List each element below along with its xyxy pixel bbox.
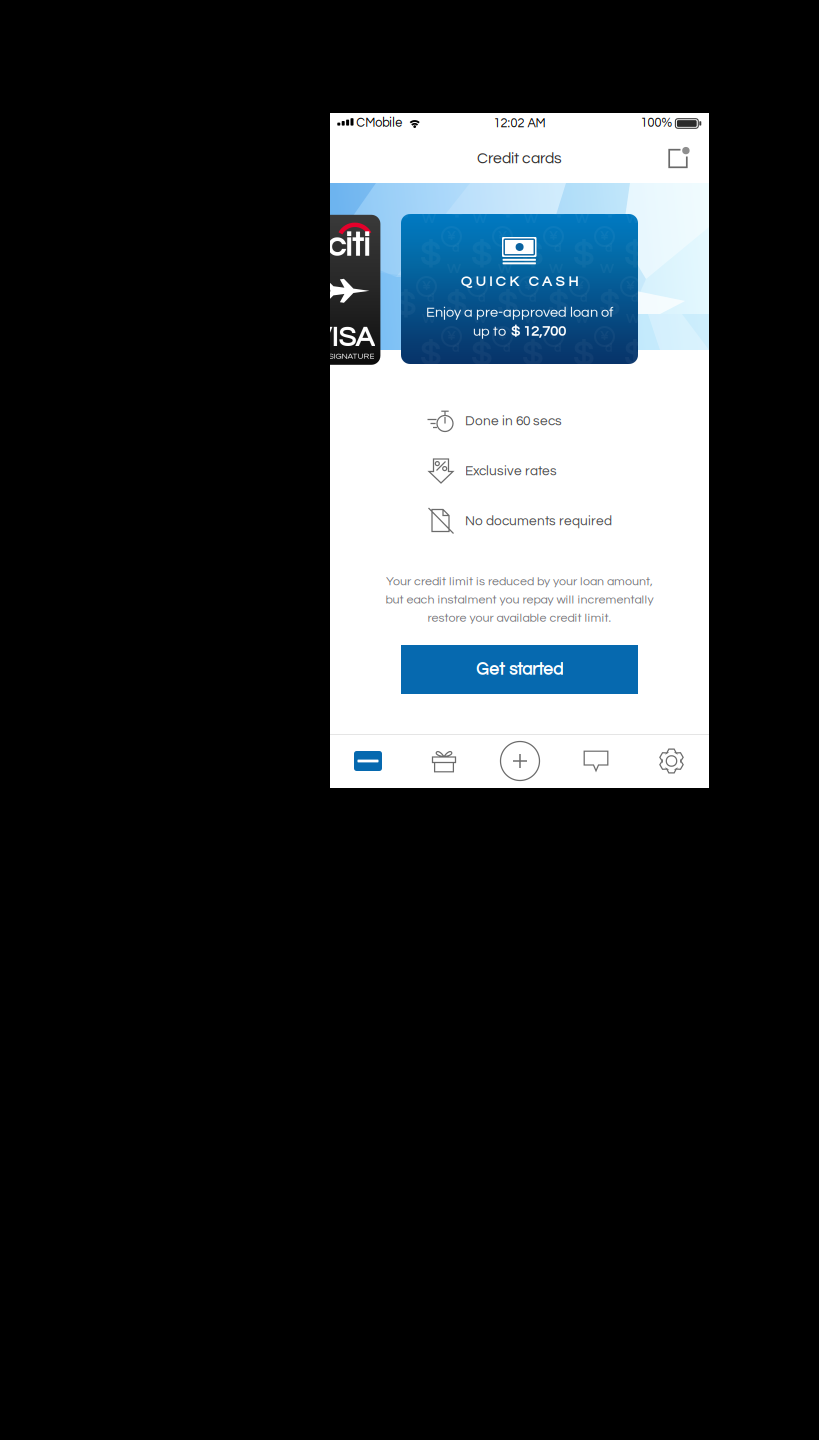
staticText: ¥ bbox=[447, 330, 456, 343]
staticText: d bbox=[427, 292, 434, 304]
button[interactable]: Notifications bbox=[656, 136, 700, 180]
staticText: restore your available credit limit. bbox=[427, 611, 611, 624]
staticText: Get started bbox=[476, 661, 563, 678]
staticText: W bbox=[549, 362, 562, 376]
staticText: ¥ bbox=[549, 230, 558, 243]
staticText: 12:02 AM bbox=[493, 117, 545, 130]
staticText: but each instalment you repay will incre… bbox=[385, 593, 653, 606]
staticText: W bbox=[473, 412, 486, 426]
staticText: ¥ bbox=[575, 180, 584, 193]
staticText: $ bbox=[675, 238, 695, 272]
staticText: d bbox=[503, 342, 510, 354]
staticText: $ 12,700 bbox=[511, 324, 566, 339]
staticText: d bbox=[452, 342, 459, 354]
staticText: $ bbox=[548, 288, 568, 322]
staticText: W bbox=[447, 362, 460, 376]
staticText: W bbox=[498, 262, 511, 276]
staticText: ¥ bbox=[473, 180, 482, 193]
staticText: W bbox=[524, 412, 537, 426]
staticText: W bbox=[473, 212, 486, 226]
staticText: ¥ bbox=[651, 330, 660, 343]
staticText: ¥ bbox=[626, 180, 635, 193]
button[interactable]: Add bbox=[482, 734, 558, 788]
staticText: ¥ bbox=[498, 330, 507, 343]
staticText: W bbox=[600, 362, 613, 376]
staticText: d bbox=[554, 242, 561, 254]
staticText: $ bbox=[573, 238, 593, 272]
staticText: ¥ bbox=[422, 280, 431, 293]
staticText: ¥ bbox=[600, 330, 609, 343]
staticText: $ bbox=[420, 238, 440, 272]
staticText: d bbox=[707, 442, 714, 454]
staticText: $ bbox=[522, 438, 542, 472]
staticText: $ bbox=[446, 288, 466, 322]
staticText: $ bbox=[599, 288, 619, 322]
button[interactable]: Get started bbox=[401, 645, 638, 694]
staticText: d bbox=[605, 242, 612, 254]
staticText: d bbox=[682, 292, 689, 304]
staticText: 100% bbox=[640, 116, 672, 129]
button[interactable]: Settings bbox=[634, 734, 709, 788]
staticText: ¥ bbox=[549, 330, 558, 343]
staticText: Your credit limit is reduced by your loa… bbox=[386, 575, 653, 588]
staticText: d bbox=[605, 342, 612, 354]
staticText: up to bbox=[473, 324, 506, 339]
staticText: ¥ bbox=[702, 230, 711, 243]
staticText: $ bbox=[522, 238, 542, 272]
staticText: W bbox=[677, 312, 690, 326]
staticText: ¥ bbox=[422, 180, 431, 193]
staticText: W bbox=[600, 262, 613, 276]
staticText: ¥ bbox=[702, 430, 711, 443]
staticText: Credit cards bbox=[477, 150, 562, 167]
staticText: ¥ bbox=[575, 280, 584, 293]
staticText: $ bbox=[522, 338, 542, 372]
staticText: $ bbox=[446, 188, 466, 222]
staticText: ¥ bbox=[702, 330, 711, 343]
staticText: d bbox=[707, 242, 714, 254]
staticText: $ bbox=[599, 188, 619, 222]
button[interactable]: Messages bbox=[558, 734, 634, 788]
staticText: d bbox=[503, 242, 510, 254]
staticText: ¥ bbox=[473, 280, 482, 293]
button[interactable]: Rewards bbox=[406, 734, 482, 788]
staticText: W bbox=[575, 212, 588, 226]
button[interactable]: Cards bbox=[330, 734, 406, 788]
staticText: W bbox=[626, 212, 639, 226]
staticText: ¥ bbox=[447, 430, 456, 443]
staticText: $ bbox=[420, 338, 440, 372]
staticText: $ bbox=[471, 238, 491, 272]
staticText: $ bbox=[624, 238, 644, 272]
staticText: W bbox=[549, 262, 562, 276]
staticText: W bbox=[447, 262, 460, 276]
staticText: W bbox=[447, 462, 460, 476]
staticText: d bbox=[452, 242, 459, 254]
staticText: $ bbox=[395, 188, 415, 222]
staticText: W bbox=[626, 312, 639, 326]
staticText: ¥ bbox=[626, 280, 635, 293]
